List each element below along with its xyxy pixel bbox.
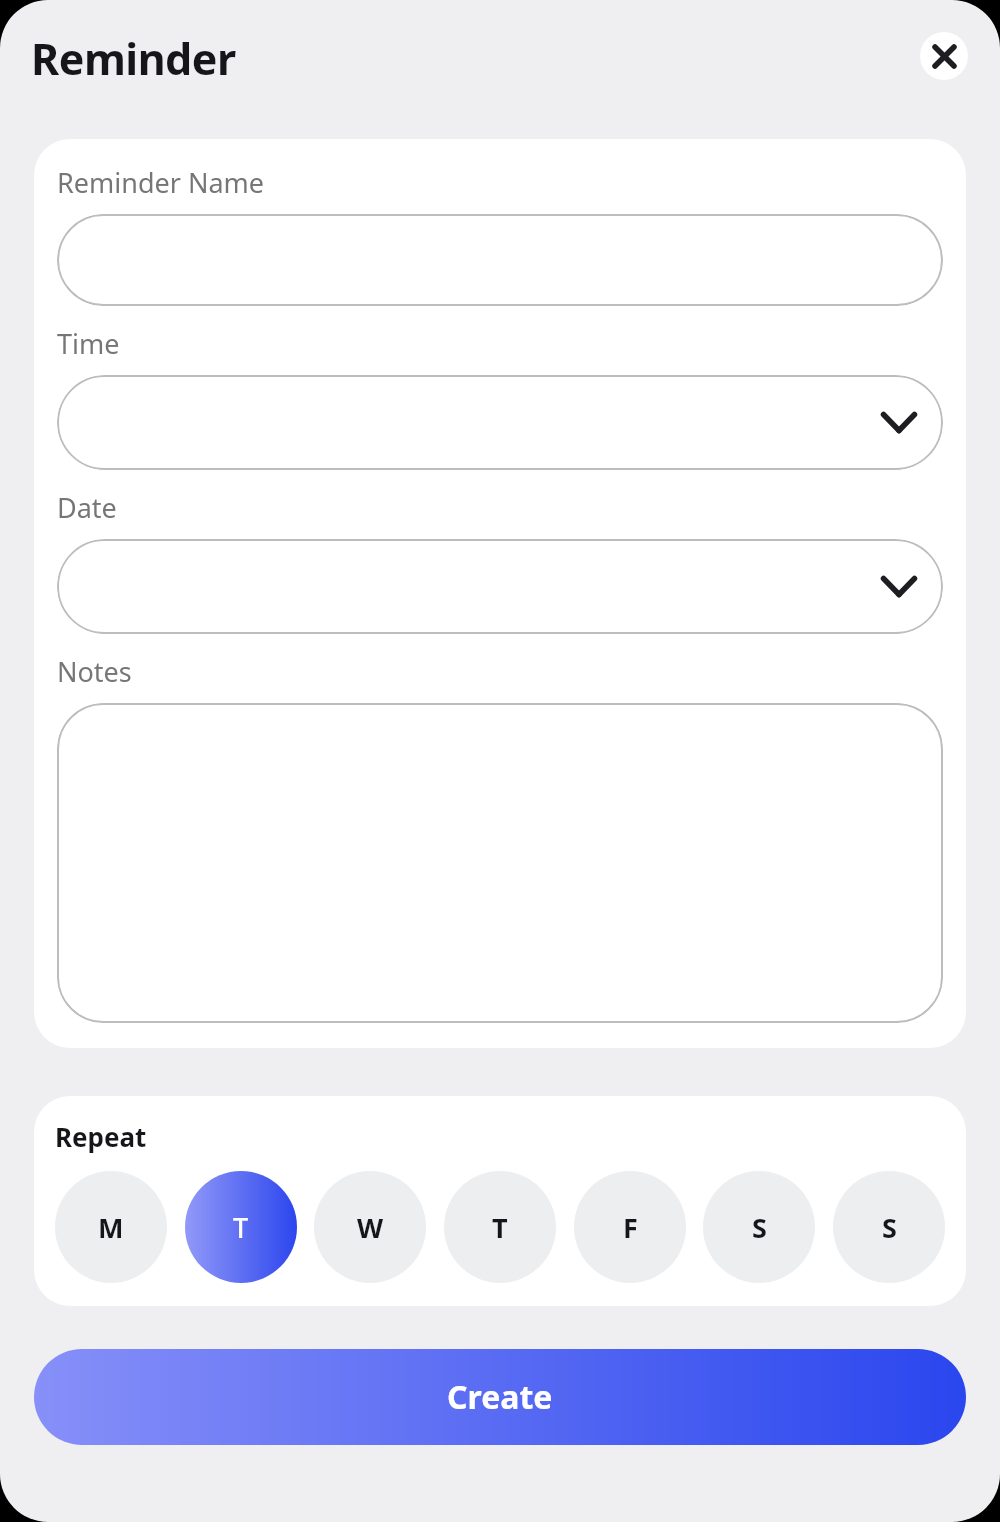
staticText: T [233,1209,249,1246]
button[interactable]: S [833,1171,945,1283]
staticText: T [492,1209,508,1246]
button[interactable]: Reminder name input [57,214,943,306]
staticText: Repeat [55,1119,147,1154]
button[interactable]: Select date [57,539,943,634]
button[interactable]: T [444,1171,556,1283]
button[interactable]: T [185,1171,297,1283]
staticText: S [882,1209,897,1246]
staticText: W [357,1209,384,1246]
staticText: S [752,1209,767,1246]
staticText: F [623,1209,638,1246]
staticText: Date [57,489,117,526]
button[interactable]: Close [920,32,968,80]
staticText: Reminder [31,29,236,88]
button[interactable]: Notes input [57,703,943,1023]
button[interactable]: Select time [57,375,943,470]
staticText: Notes [57,653,132,690]
staticText: Reminder Name [57,164,265,201]
button[interactable]: F [574,1171,686,1283]
button[interactable]: W [314,1171,426,1283]
staticText: M [98,1209,124,1246]
staticText: Create [447,1375,553,1419]
button[interactable]: M [55,1171,167,1283]
staticText: Time [57,325,120,362]
button[interactable]: Create [34,1349,966,1445]
button[interactable]: S [703,1171,815,1283]
